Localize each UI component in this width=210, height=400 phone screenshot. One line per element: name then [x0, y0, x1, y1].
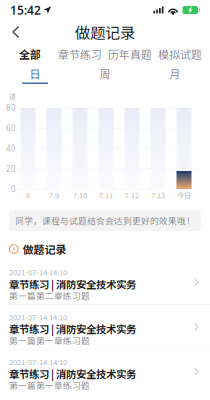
button[interactable]: 全部	[5, 44, 55, 64]
staticText: 历年真题	[108, 46, 152, 62]
button[interactable]: 章节练习	[55, 44, 105, 64]
staticText: 章节练习 | 消防安全技术实务	[9, 276, 136, 292]
staticText: 7.11	[99, 190, 113, 200]
button[interactable]: 2021-07-14 14:10	[0, 260, 210, 304]
staticText: 20	[6, 163, 16, 174]
staticText: 第一篇第一章练习题	[9, 334, 90, 346]
staticText: 15:42	[10, 2, 41, 18]
staticText: 章节练习	[58, 46, 102, 62]
staticText: 做题记录	[75, 21, 135, 43]
staticText: 80	[6, 103, 16, 113]
staticText: 7.10	[73, 190, 87, 200]
staticText: 0	[11, 184, 16, 194]
button[interactable]: 2021-07-14 14:10	[0, 350, 210, 394]
staticText: 2021-07-14 14:10	[9, 356, 67, 367]
staticText: 章节练习 | 消防安全技术实务	[9, 321, 136, 336]
staticText: 同学，课程与试题结合会达到更好的效果哦！	[15, 214, 195, 227]
staticText: 第一篇第一章练习题	[9, 379, 90, 391]
staticText: 全部	[19, 46, 41, 62]
staticText: 第一篇第二章练习题	[9, 289, 90, 302]
button[interactable]: 2021-07-14 14:10	[0, 305, 210, 349]
button[interactable]: 模拟试题	[155, 44, 205, 64]
staticText: 模拟试题	[158, 46, 202, 62]
staticText: 2021-07-14 14:10	[9, 266, 67, 278]
staticText: 7.9	[49, 190, 59, 200]
staticText: 40	[6, 143, 16, 154]
staticText: 月	[169, 66, 180, 81]
button[interactable]: 周	[70, 64, 140, 90]
staticText: 章节练习 | 消防安全技术实务	[9, 366, 136, 381]
button[interactable]: 日	[0, 64, 70, 90]
staticText: 日	[29, 66, 40, 81]
staticText: 60	[6, 123, 16, 133]
staticText: 今日	[177, 190, 191, 200]
button[interactable]: 历年真题	[105, 44, 155, 64]
staticText: 7.13	[151, 190, 165, 200]
staticText: 周	[99, 66, 110, 81]
staticText: 道	[9, 91, 16, 101]
staticText: 8	[26, 190, 30, 200]
button[interactable]: 月	[140, 64, 210, 90]
staticText: 2021-07-14 14:10	[9, 311, 67, 322]
staticText: 做题记录	[23, 241, 67, 257]
staticText: 7.12	[125, 190, 139, 200]
button[interactable]: 返回	[4, 21, 28, 43]
